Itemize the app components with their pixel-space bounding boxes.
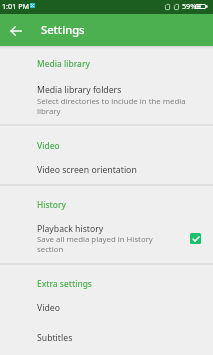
button: History	[37, 199, 66, 210]
button: Extra settings	[37, 278, 92, 289]
staticText: Settings	[41, 22, 85, 37]
staticText: Video	[37, 140, 60, 151]
staticText: History	[37, 199, 66, 210]
staticText: Media library folders	[37, 84, 122, 96]
staticText: Video screen orientation	[37, 164, 137, 176]
staticText: 1:01 PM	[2, 1, 29, 11]
staticText: Media library	[37, 58, 90, 69]
staticText: Save all media played in History section	[37, 234, 167, 254]
button[interactable]: Playback history toggle	[190, 233, 201, 244]
staticText: Subtitles	[37, 332, 73, 344]
staticText: Extra settings	[37, 278, 92, 289]
staticText: Video	[37, 302, 60, 314]
staticText: Select directories to include in the med…	[37, 96, 189, 116]
staticText: 59%	[182, 1, 197, 11]
button: Media library	[37, 58, 90, 69]
staticText: Playback history	[37, 223, 104, 235]
button[interactable]: Back	[5, 20, 26, 41]
button: Video	[37, 140, 60, 151]
